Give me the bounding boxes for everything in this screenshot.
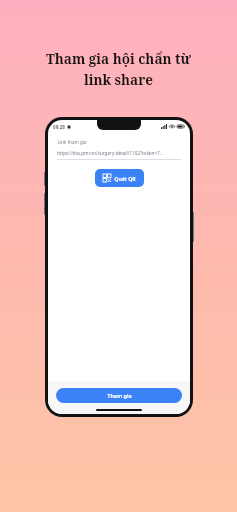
staticText: link share	[84, 71, 153, 89]
staticText: Tham gia hội chẩn từ	[46, 50, 191, 68]
staticText: 09:28	[53, 124, 65, 130]
button[interactable]: Quét QR	[95, 169, 144, 187]
button[interactable]: Tham gia	[56, 388, 182, 403]
staticText: https://dss.pmr.vn/surgery-detail/1102?t…	[57, 150, 162, 156]
staticText: Tham gia	[107, 392, 132, 399]
staticText: Link tham gia	[57, 139, 87, 145]
staticText: Quét QR	[114, 175, 136, 182]
other: Quét QR	[103, 174, 111, 182]
